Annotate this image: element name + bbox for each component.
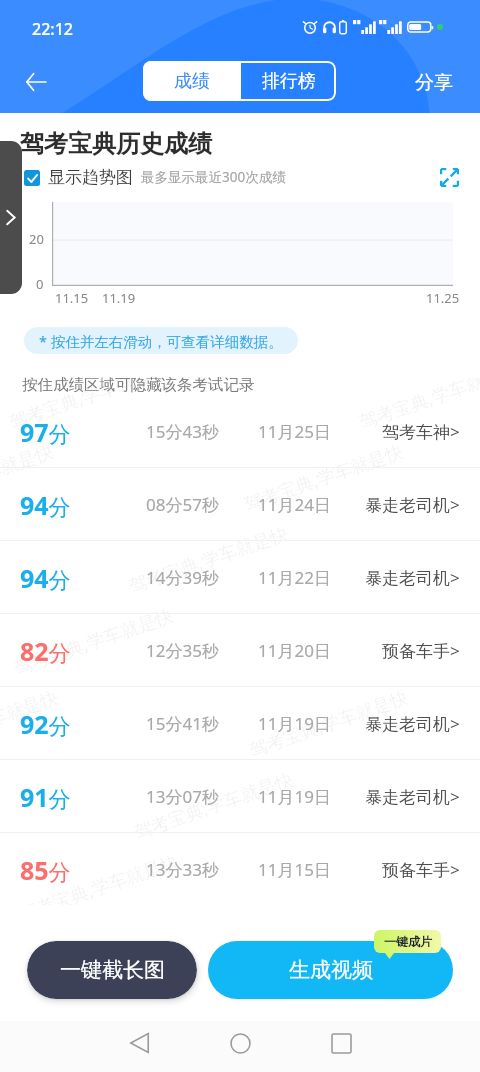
staticText: 11.19 [102, 289, 136, 307]
staticText: 驾考宝典,学车就是快 [0, 684, 61, 762]
staticText: 22:12 [32, 18, 73, 40]
staticText: 预备车手> [382, 639, 460, 662]
button[interactable]: Back [117, 1021, 161, 1065]
button[interactable]: 成绩 [143, 61, 241, 101]
staticText: 最多显示最近300次成绩 [141, 168, 286, 186]
button[interactable]: Back [16, 62, 56, 102]
button[interactable]: 分享 [405, 63, 463, 103]
staticText: 驾考宝典,学车就是快 [240, 438, 406, 516]
staticText: 驾考宝典,学车就是快 [5, 378, 171, 434]
staticText: 12分35秒 [146, 639, 219, 662]
staticText: 15分41秒 [146, 712, 219, 735]
staticText: 驾考宝典,学车就是快 [10, 602, 176, 680]
button[interactable]: 94分 [0, 468, 480, 541]
staticText: 暴走老司机> [365, 566, 460, 589]
staticText: 一键截长图 [60, 957, 165, 983]
button[interactable]: 一键截长图 [27, 941, 197, 999]
button[interactable]: 82分 [0, 614, 480, 687]
staticText: 82分 [20, 634, 71, 668]
button[interactable]: 生成视频 [208, 941, 453, 999]
staticText: 11.15 [55, 289, 89, 307]
button[interactable]: 排行榜 [241, 61, 336, 101]
staticText: 11月19日 [258, 785, 331, 808]
staticText: 驾考宝典,学车就是快 [245, 684, 411, 762]
staticText: 驾考宝典,学车就是快 [0, 438, 56, 516]
staticText: 97分 [20, 415, 71, 449]
staticText: 分享 [415, 71, 453, 95]
staticText: 94分 [20, 488, 71, 522]
staticText: 暴走老司机> [365, 493, 460, 516]
staticText: 11月15日 [258, 858, 331, 881]
staticText: 生成视频 [289, 957, 373, 983]
staticText: 15分43秒 [146, 420, 219, 443]
staticText: 显示趋势图 [48, 167, 133, 188]
staticText: 11月24日 [258, 493, 331, 516]
staticText: 11.25 [426, 289, 460, 307]
staticText: 驾考宝典,学车就是快 [125, 520, 291, 598]
staticText: 驾考车神> [382, 420, 460, 443]
staticText: 暴走老司机> [365, 712, 460, 735]
button[interactable]: Home [218, 1021, 262, 1065]
staticText: 0 [36, 275, 44, 293]
staticText: 按住成绩区域可隐藏该条考试记录 [22, 375, 255, 395]
staticText: 11月22日 [258, 566, 331, 589]
button[interactable]: Fullscreen [436, 164, 462, 190]
staticText: 94分 [20, 561, 71, 595]
staticText: 11月19日 [258, 712, 331, 735]
staticText: 驾考宝典历史成绩 [20, 129, 212, 159]
staticText: 08分57秒 [146, 493, 219, 516]
staticText: 暴走老司机> [365, 785, 460, 808]
button[interactable]: 85分 [0, 833, 480, 906]
staticText: 一键成片 [384, 934, 432, 949]
staticText: 92分 [20, 707, 71, 741]
staticText: * 按住并左右滑动，可查看详细数据。 [39, 331, 283, 351]
button[interactable]: 94分 [0, 541, 480, 614]
staticText: 预备车手> [382, 858, 460, 881]
staticText: 排行榜 [262, 70, 316, 93]
staticText: 驾考宝典,学车就是快 [355, 378, 480, 434]
staticText: 13分33秒 [146, 858, 219, 881]
staticText: 成绩 [174, 70, 210, 93]
staticText: 20 [29, 230, 44, 248]
staticText: 驾考宝典,学车就是快 [15, 848, 181, 906]
button[interactable]: Recent apps [319, 1021, 363, 1065]
staticText: 14分39秒 [146, 566, 219, 589]
staticText: 驾考宝典,学车就是快 [130, 766, 296, 844]
staticText: 91分 [20, 780, 71, 814]
staticText: 11月25日 [258, 420, 331, 443]
button[interactable]: 91分 [0, 760, 480, 833]
button[interactable]: Open side panel [0, 141, 22, 294]
button[interactable]: 97分 [0, 395, 480, 468]
staticText: 85分 [20, 853, 71, 887]
button[interactable]: 92分 [0, 687, 480, 760]
staticText: 11月20日 [258, 639, 331, 662]
staticText: 13分07秒 [146, 785, 219, 808]
button[interactable]: 显示趋势图 [24, 167, 133, 188]
